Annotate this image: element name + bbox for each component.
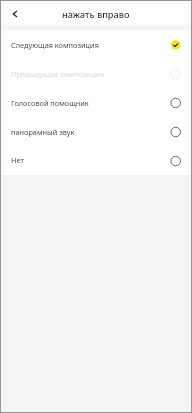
staticText: Следующая композиция xyxy=(11,40,99,50)
button[interactable]: Предыдущая композиция xyxy=(0,60,192,89)
button[interactable]: Нет xyxy=(0,147,192,175)
staticText: Голосовой помощник xyxy=(11,98,89,108)
staticText: панорамный звук xyxy=(11,127,75,137)
staticText: Нет xyxy=(11,155,24,165)
button[interactable]: панорамный звук xyxy=(0,118,192,147)
button[interactable]: Голосовой помощник xyxy=(0,89,192,118)
staticText: нажать вправо xyxy=(62,8,130,21)
staticText: Предыдущая композиция xyxy=(11,69,104,79)
button[interactable]: Следующая композиция xyxy=(0,31,192,60)
button[interactable]: Back xyxy=(2,3,28,24)
